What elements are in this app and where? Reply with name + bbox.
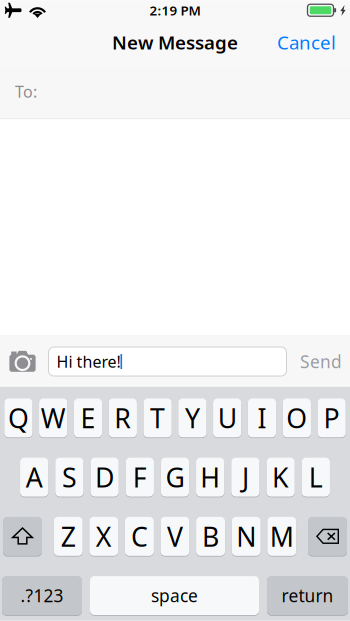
staticText: return xyxy=(281,584,333,607)
staticText: .?123 xyxy=(20,584,63,607)
staticText: K xyxy=(272,459,289,495)
staticText: Hi there! xyxy=(56,351,120,372)
button[interactable]: Cancel xyxy=(267,24,346,61)
staticText: O xyxy=(286,400,307,436)
staticText: R xyxy=(114,400,131,436)
button[interactable]: R xyxy=(109,398,137,438)
button[interactable]: C xyxy=(125,516,154,556)
staticText: U xyxy=(218,400,237,436)
staticText: D xyxy=(95,459,114,495)
button[interactable]: K xyxy=(266,457,295,497)
button[interactable]: E xyxy=(74,398,102,438)
button[interactable]: Delete xyxy=(308,516,347,556)
button[interactable]: Camera xyxy=(0,336,48,386)
staticText: S xyxy=(62,459,77,495)
staticText: To: xyxy=(15,81,37,102)
button[interactable]: Q xyxy=(4,398,32,438)
staticText: L xyxy=(309,459,323,495)
staticText: X xyxy=(96,519,112,554)
button[interactable]: X xyxy=(89,516,118,556)
button[interactable]: space xyxy=(90,575,259,616)
staticText: Y xyxy=(185,400,200,436)
staticText: J xyxy=(242,459,249,495)
staticText: New Message xyxy=(112,30,238,55)
button[interactable]: P xyxy=(317,398,346,438)
button[interactable]: Y xyxy=(178,398,206,438)
button[interactable]: F xyxy=(126,457,154,497)
button[interactable]: B xyxy=(196,516,225,556)
button[interactable]: L xyxy=(302,457,330,497)
button[interactable]: A xyxy=(20,457,48,497)
staticText: C xyxy=(131,519,148,554)
staticText: I xyxy=(257,400,266,436)
staticText: H xyxy=(200,459,220,495)
staticText: space xyxy=(151,584,198,607)
staticText: 2:19 PM xyxy=(149,1,200,19)
staticText: T xyxy=(150,400,165,436)
staticText: Z xyxy=(61,519,76,554)
button[interactable]: To: xyxy=(0,64,350,119)
button[interactable]: G xyxy=(161,457,189,497)
staticText: E xyxy=(80,400,95,436)
button[interactable]: N xyxy=(232,516,261,556)
staticText: M xyxy=(270,519,294,554)
button[interactable]: W xyxy=(39,398,67,438)
button[interactable]: return xyxy=(267,575,348,616)
button[interactable]: V xyxy=(160,516,189,556)
button[interactable]: .?123 xyxy=(2,575,82,616)
staticText: Cancel xyxy=(277,30,336,55)
button[interactable]: Z xyxy=(54,516,83,556)
staticText: P xyxy=(324,400,340,436)
staticText: G xyxy=(165,459,184,495)
staticText: F xyxy=(133,459,147,495)
button[interactable]: M xyxy=(267,516,296,556)
staticText: Send xyxy=(300,350,342,373)
button[interactable]: U xyxy=(213,398,241,438)
button[interactable]: H xyxy=(196,457,224,497)
button[interactable]: I xyxy=(248,398,276,438)
button[interactable]: Send xyxy=(300,339,350,383)
button[interactable]: J xyxy=(231,457,259,497)
staticText: B xyxy=(202,519,219,554)
button[interactable]: Shift xyxy=(3,516,42,556)
button[interactable]: S xyxy=(55,457,83,497)
staticText: N xyxy=(236,519,256,554)
staticText: W xyxy=(41,400,66,436)
staticText: V xyxy=(167,519,183,554)
button[interactable]: T xyxy=(143,398,172,438)
staticText: Q xyxy=(8,400,29,436)
button[interactable]: D xyxy=(90,457,119,497)
button[interactable]: O xyxy=(283,398,311,438)
staticText: A xyxy=(26,459,43,495)
